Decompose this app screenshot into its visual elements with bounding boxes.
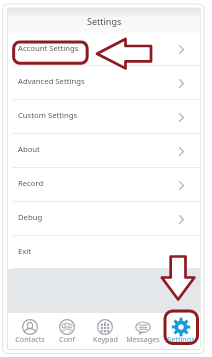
button[interactable]: Contacts: [11, 313, 48, 349]
button[interactable]: About: [8, 134, 200, 168]
staticText: Record: [18, 178, 44, 188]
staticText: Settings: [87, 15, 122, 27]
button[interactable]: Settings: [162, 313, 200, 349]
button[interactable]: Account Settings: [8, 33, 200, 66]
button[interactable]: Conf: [48, 313, 86, 349]
staticText: Account Settings: [18, 43, 79, 53]
staticText: Conf: [59, 334, 75, 344]
staticText: Custom Settings: [18, 110, 78, 120]
staticText: Advanced Settings: [18, 76, 85, 86]
button[interactable]: Record: [8, 168, 200, 202]
staticText: Contacts: [15, 334, 45, 344]
staticText: Settings: [167, 334, 195, 344]
button[interactable]: Debug: [8, 202, 200, 236]
staticText: Exit: [18, 246, 32, 256]
button[interactable]: Keypad: [86, 313, 124, 349]
staticText: Keypad: [93, 334, 118, 344]
button[interactable]: Custom Settings: [8, 100, 200, 134]
staticText: Debug: [18, 212, 43, 222]
button[interactable]: Advanced Settings: [8, 66, 200, 100]
staticText: About: [18, 144, 40, 154]
button[interactable]: Messages: [124, 313, 162, 349]
button[interactable]: Exit: [8, 236, 200, 269]
staticText: Messages: [126, 334, 160, 344]
